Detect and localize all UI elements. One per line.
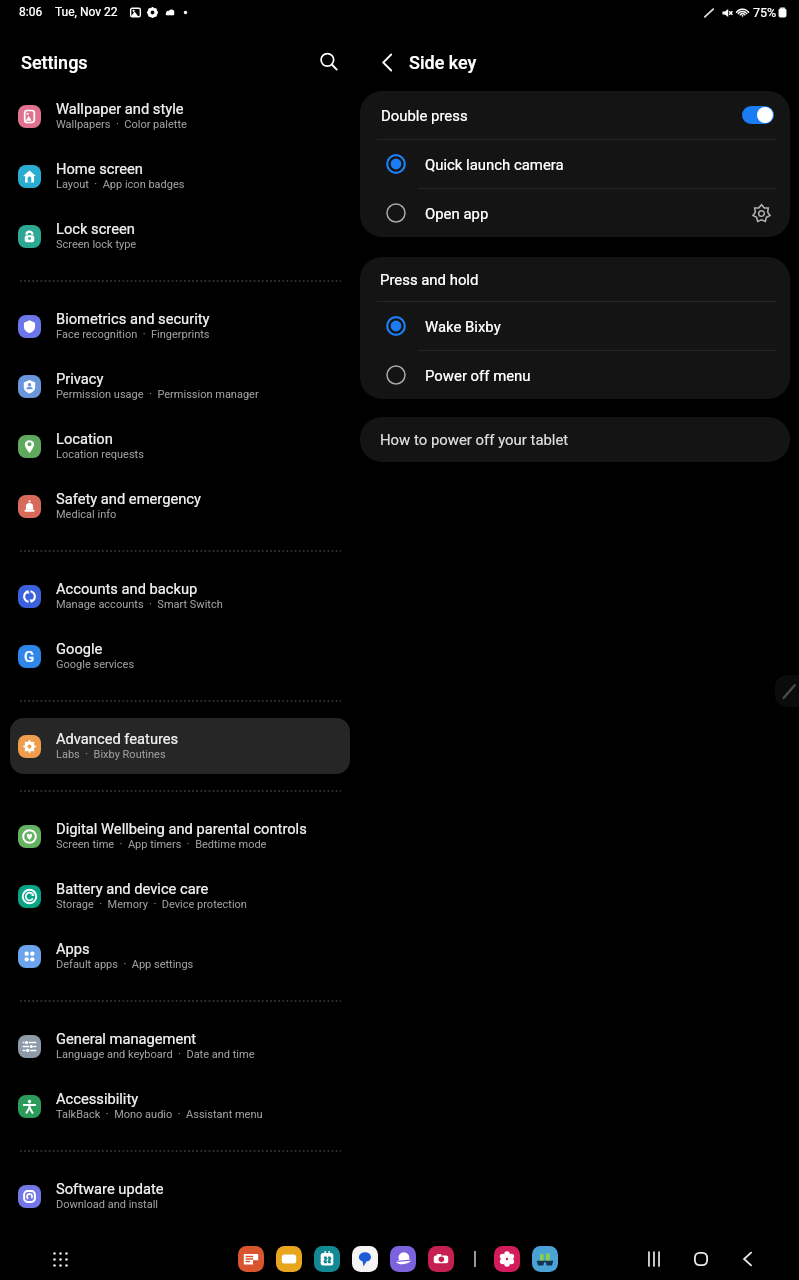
button[interactable]: G bbox=[10, 628, 350, 684]
staticText: Accessibility bbox=[56, 1090, 139, 1107]
staticText: Open app bbox=[425, 205, 489, 222]
staticText: Permission usage · Permission manager bbox=[56, 388, 259, 401]
staticText: Digital Wellbeing and parental controls bbox=[56, 820, 307, 837]
staticText: Location bbox=[56, 430, 113, 447]
button[interactable]: Location bbox=[10, 418, 350, 474]
staticText: Quick launch camera bbox=[425, 156, 564, 173]
staticText: Privacy bbox=[56, 370, 104, 387]
staticText: Battery and device care bbox=[56, 880, 209, 897]
staticText: Storage · Memory · Device protection bbox=[56, 898, 247, 911]
button[interactable]: Accessibility bbox=[10, 1078, 350, 1134]
staticText: General management bbox=[56, 1030, 197, 1047]
staticText: Tue, Nov 22 bbox=[55, 5, 118, 19]
button[interactable]: Gallery bbox=[494, 1246, 520, 1272]
staticText: Wake Bixby bbox=[425, 318, 501, 335]
button[interactable]: Recents bbox=[630, 1238, 677, 1280]
staticText: Manage accounts · Smart Switch bbox=[56, 598, 223, 611]
staticText: Side key bbox=[409, 52, 477, 73]
button[interactable]: Home bbox=[677, 1238, 724, 1280]
staticText: Language and keyboard · Date and time bbox=[56, 1048, 255, 1061]
staticText: Double press bbox=[381, 107, 468, 124]
button[interactable]: Messages bbox=[352, 1246, 378, 1272]
button[interactable]: Back bbox=[724, 1238, 771, 1280]
staticText: Google services bbox=[56, 658, 135, 671]
staticText: Default apps · App settings bbox=[56, 958, 194, 971]
staticText: Medical info bbox=[56, 508, 117, 521]
button[interactable]: Apps bbox=[10, 928, 350, 984]
staticText: G bbox=[24, 648, 35, 666]
button[interactable]: Lock screen bbox=[10, 208, 350, 264]
button[interactable]: Wake Bixby bbox=[360, 302, 790, 350]
staticText: Biometrics and security bbox=[56, 310, 210, 327]
button[interactable]: Quick launch camera bbox=[360, 140, 790, 188]
staticText: How to power off your tablet bbox=[380, 431, 569, 448]
staticText: Screen lock type bbox=[56, 238, 137, 251]
button[interactable]: Power off menu bbox=[360, 351, 790, 399]
button[interactable]: Safety and emergency bbox=[10, 478, 350, 534]
button[interactable]: Open app bbox=[360, 189, 790, 237]
staticText: Wallpapers · Color palette bbox=[56, 118, 187, 131]
button[interactable]: Privacy bbox=[10, 358, 350, 414]
button[interactable]: Open app settings bbox=[746, 198, 776, 228]
staticText: Download and install bbox=[56, 1198, 159, 1211]
button[interactable]: My Files bbox=[276, 1246, 302, 1272]
staticText: TalkBack · Mono audio · Assistant menu bbox=[56, 1108, 263, 1121]
button[interactable]: Search bbox=[309, 42, 349, 82]
button[interactable]: Biometrics and security bbox=[10, 298, 350, 354]
button[interactable]: Galaxy Store bbox=[532, 1246, 558, 1272]
button[interactable]: Accounts and backup bbox=[10, 568, 350, 624]
button[interactable]: Calendar bbox=[314, 1246, 340, 1272]
button[interactable]: Double press bbox=[360, 91, 790, 139]
button[interactable]: Internet bbox=[390, 1246, 416, 1272]
staticText: Wallpaper and style bbox=[56, 100, 184, 117]
staticText: Location requests bbox=[56, 448, 144, 461]
staticText: Settings bbox=[21, 52, 88, 73]
staticText: Layout · App icon badges bbox=[56, 178, 185, 191]
staticText: Advanced features bbox=[56, 730, 179, 747]
staticText: Home screen bbox=[56, 160, 143, 177]
staticText: Apps bbox=[56, 940, 90, 957]
staticText: 75% bbox=[753, 5, 777, 20]
staticText: Software update bbox=[56, 1180, 164, 1197]
staticText: Accounts and backup bbox=[56, 580, 198, 597]
button[interactable]: Battery and device care bbox=[10, 868, 350, 924]
staticText: Face recognition · Fingerprints bbox=[56, 328, 210, 341]
staticText: Safety and emergency bbox=[56, 490, 201, 507]
button[interactable]: Back bbox=[369, 44, 405, 80]
button[interactable]: Camera bbox=[428, 1246, 454, 1272]
staticText: Press and hold bbox=[380, 271, 479, 288]
button[interactable]: Edge panel bbox=[775, 675, 799, 707]
button[interactable]: Samsung Notes bbox=[238, 1246, 264, 1272]
button[interactable]: Software update bbox=[10, 1168, 350, 1224]
staticText: Google bbox=[56, 640, 103, 657]
button[interactable]: General management bbox=[10, 1018, 350, 1074]
staticText: Lock screen bbox=[56, 220, 135, 237]
button[interactable]: Wallpaper and style bbox=[10, 88, 350, 144]
button[interactable]: How to power off your tablet bbox=[360, 417, 790, 462]
button[interactable]: Digital Wellbeing and parental controls bbox=[10, 808, 350, 864]
staticText: 8:06 bbox=[19, 5, 43, 19]
staticText: Power off menu bbox=[425, 367, 531, 384]
button[interactable]: All apps bbox=[44, 1243, 76, 1275]
button[interactable]: Advanced features bbox=[10, 718, 350, 774]
staticText: Labs · Bixby Routines bbox=[56, 748, 166, 761]
button[interactable]: Home screen bbox=[10, 148, 350, 204]
staticText: Screen time · App timers · Bedtime mode bbox=[56, 838, 267, 851]
